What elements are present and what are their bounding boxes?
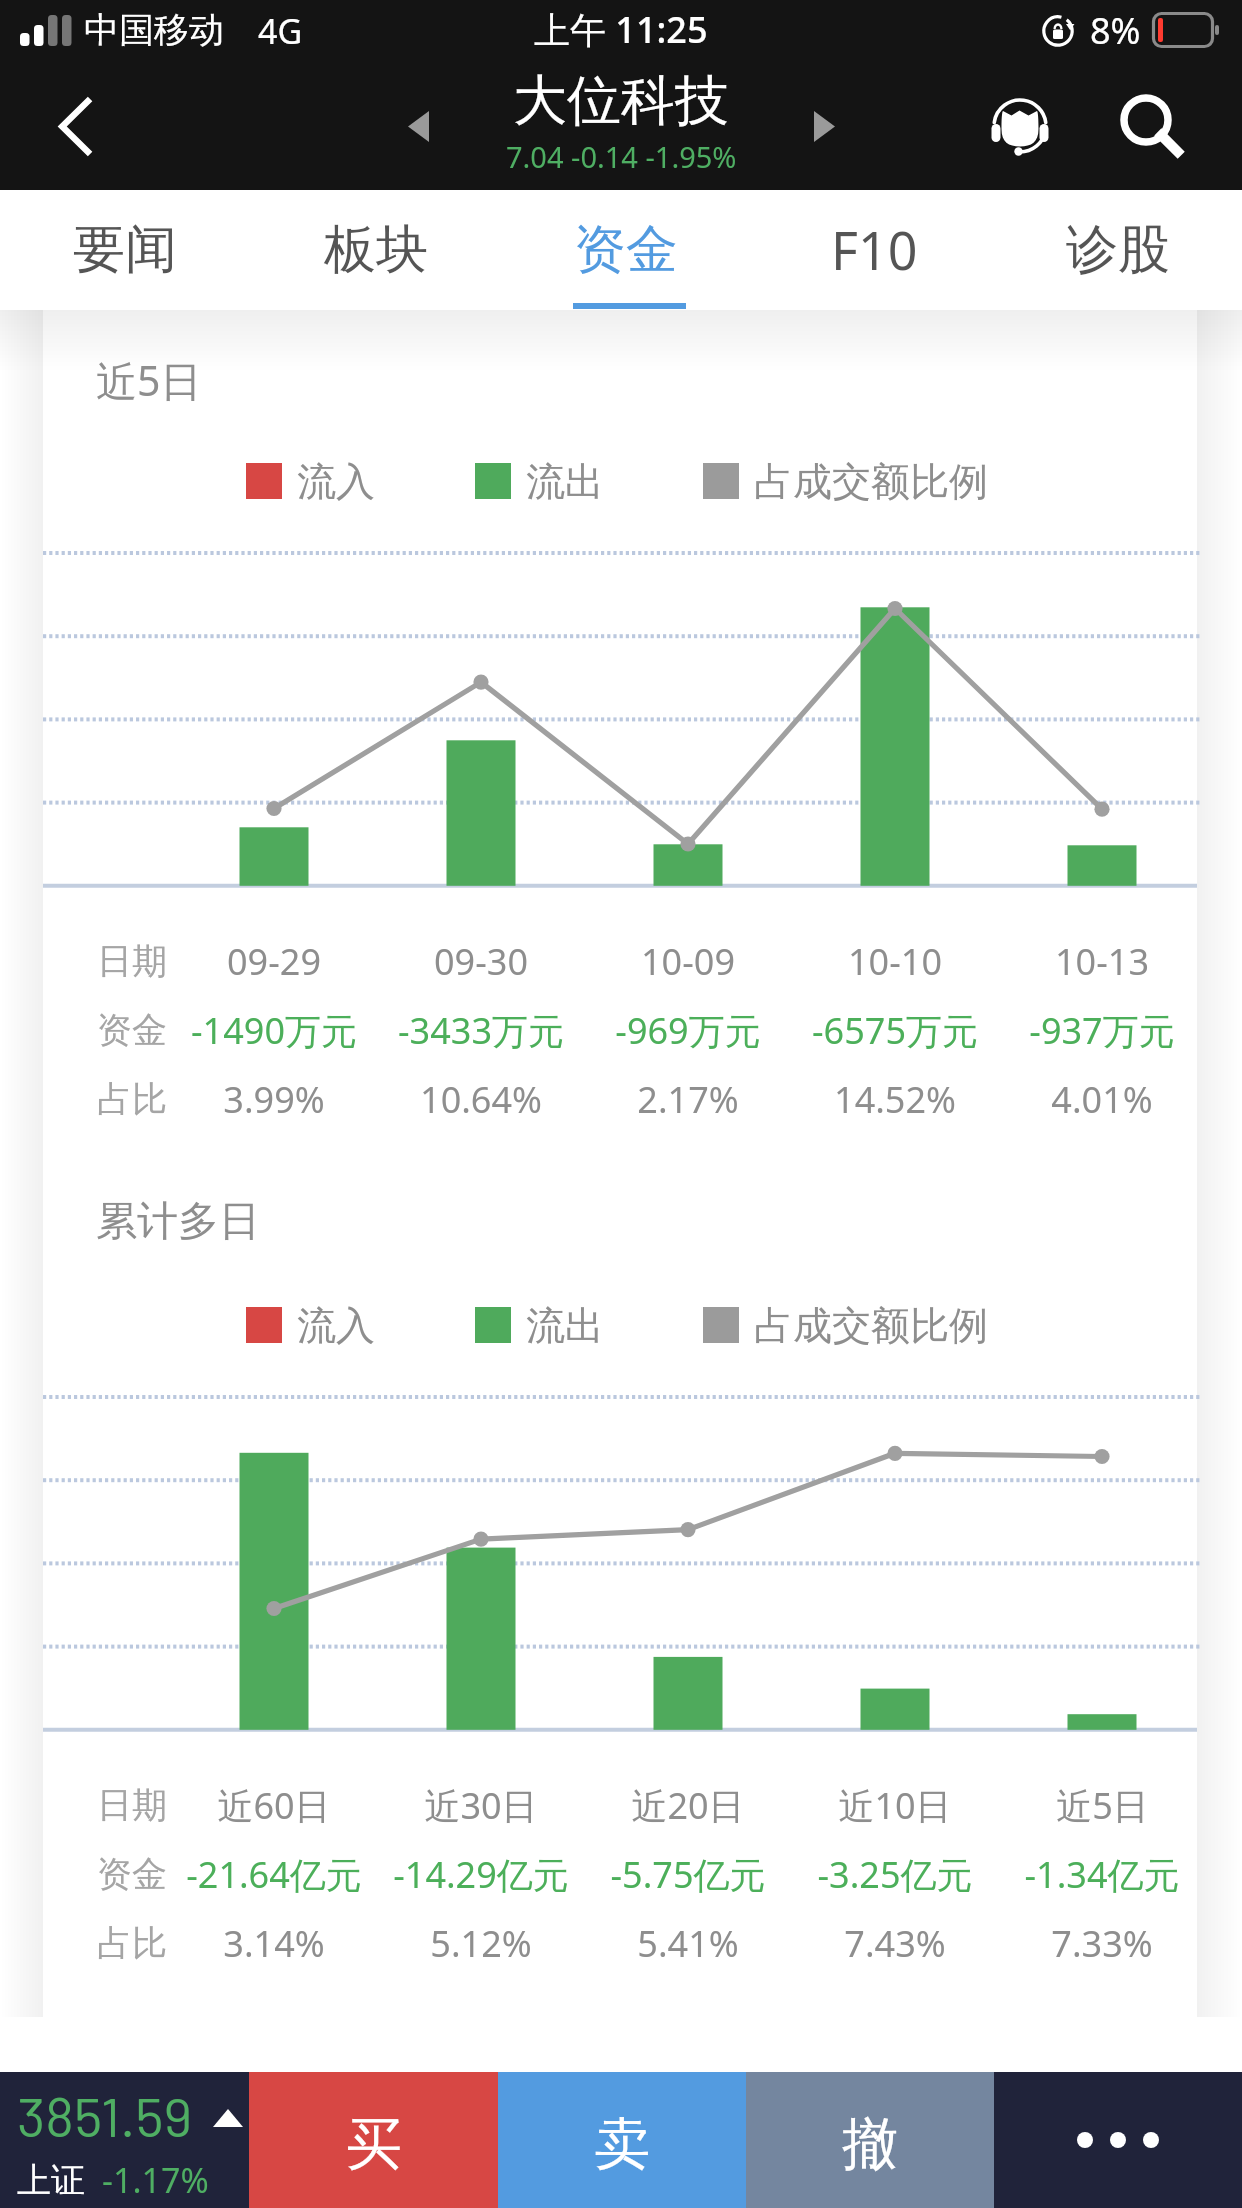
staticText: 占比 bbox=[97, 1921, 167, 1965]
staticText: 资金 bbox=[574, 217, 678, 283]
staticText: 近5日 bbox=[1056, 1781, 1149, 1830]
staticText: -6575万元 bbox=[812, 1006, 978, 1055]
staticText: -937万元 bbox=[1029, 1006, 1175, 1055]
staticText: -1490万元 bbox=[191, 1006, 357, 1055]
staticText: 近30日 bbox=[424, 1781, 538, 1830]
staticText: 4.01% bbox=[1051, 1075, 1153, 1124]
staticText: 占成交额比例 bbox=[754, 457, 988, 506]
staticText: 8% bbox=[1090, 6, 1141, 55]
staticText: 撤 bbox=[842, 2109, 898, 2180]
staticText: 流入 bbox=[297, 1301, 375, 1350]
staticText: 09-29 bbox=[227, 937, 321, 986]
staticText: 占成交额比例 bbox=[754, 1301, 988, 1350]
button[interactable]: 大位科技 bbox=[421, 67, 821, 177]
staticText: 2.17% bbox=[637, 1075, 739, 1124]
staticText: -969万元 bbox=[615, 1006, 761, 1055]
staticText: -1.34亿元 bbox=[1024, 1850, 1180, 1899]
staticText: 4G bbox=[258, 8, 303, 54]
staticText: 资金 bbox=[97, 1008, 167, 1052]
staticText: -5.75亿元 bbox=[610, 1850, 766, 1899]
staticText: 卖 bbox=[594, 2109, 650, 2180]
button[interactable]: Back bbox=[25, 76, 125, 176]
staticText: 10-10 bbox=[848, 937, 942, 986]
staticText: 日期 bbox=[97, 939, 167, 983]
staticText: 3851.59 bbox=[17, 2082, 193, 2148]
staticText: 板块 bbox=[324, 217, 428, 283]
staticText: 3.99% bbox=[223, 1075, 325, 1124]
staticText: 中国移动 bbox=[84, 8, 224, 52]
button[interactable]: Search bbox=[1097, 73, 1200, 173]
staticText: 流出 bbox=[526, 1301, 604, 1350]
staticText: -14.29亿元 bbox=[393, 1850, 569, 1899]
staticText: 5.12% bbox=[430, 1919, 532, 1968]
staticText: 近10日 bbox=[838, 1781, 952, 1830]
staticText: 近60日 bbox=[217, 1781, 331, 1830]
button[interactable]: Customer service bbox=[961, 76, 1079, 176]
staticText: 7.04 -0.14 -1.95% bbox=[506, 137, 737, 176]
staticText: 近20日 bbox=[631, 1781, 745, 1830]
staticText: 5.41% bbox=[637, 1919, 739, 1968]
staticText: 日期 bbox=[97, 1783, 167, 1827]
staticText: 7.43% bbox=[844, 1919, 946, 1968]
staticText: 上证 bbox=[17, 2159, 85, 2202]
button[interactable]: 3851.59 bbox=[0, 2072, 249, 2208]
button[interactable]: F10 bbox=[750, 190, 998, 309]
staticText: -3433万元 bbox=[398, 1006, 564, 1055]
staticText: 流入 bbox=[297, 457, 375, 506]
staticText: 近5日 bbox=[96, 352, 202, 408]
button[interactable]: 要闻 bbox=[1, 190, 249, 309]
staticText: -21.64亿元 bbox=[186, 1850, 362, 1899]
staticText: 要闻 bbox=[73, 217, 177, 283]
staticText: 14.52% bbox=[834, 1075, 956, 1124]
staticText: -1.17% bbox=[102, 2157, 209, 2203]
button[interactable]: 撤 bbox=[746, 2072, 994, 2208]
button[interactable]: 卖 bbox=[498, 2072, 746, 2208]
staticText: 流出 bbox=[526, 457, 604, 506]
button[interactable]: 板块 bbox=[252, 190, 500, 309]
button[interactable]: 买 bbox=[249, 2072, 498, 2208]
staticText: 累计多日 bbox=[96, 1196, 260, 1248]
staticText: F10 bbox=[831, 214, 918, 285]
staticText: 09-30 bbox=[434, 937, 528, 986]
staticText: 10-09 bbox=[641, 937, 735, 986]
staticText: 占比 bbox=[97, 1077, 167, 1121]
staticText: -3.25亿元 bbox=[817, 1850, 973, 1899]
staticText: 3.14% bbox=[223, 1919, 325, 1968]
button[interactable]: 诊股 bbox=[994, 190, 1242, 309]
staticText: 买 bbox=[346, 2109, 402, 2180]
staticText: 7.33% bbox=[1051, 1919, 1153, 1968]
staticText: 大位科技 bbox=[513, 67, 729, 135]
staticText: 10-13 bbox=[1055, 937, 1149, 986]
staticText: 上午 11:25 bbox=[534, 5, 708, 54]
button[interactable]: Next stock bbox=[779, 81, 869, 171]
staticText: 诊股 bbox=[1066, 217, 1170, 283]
staticText: 10.64% bbox=[420, 1075, 542, 1124]
button[interactable]: More bbox=[994, 2072, 1242, 2208]
staticText: 资金 bbox=[97, 1852, 167, 1896]
button[interactable]: 资金 bbox=[502, 190, 750, 309]
button[interactable]: Previous stock bbox=[373, 81, 463, 171]
